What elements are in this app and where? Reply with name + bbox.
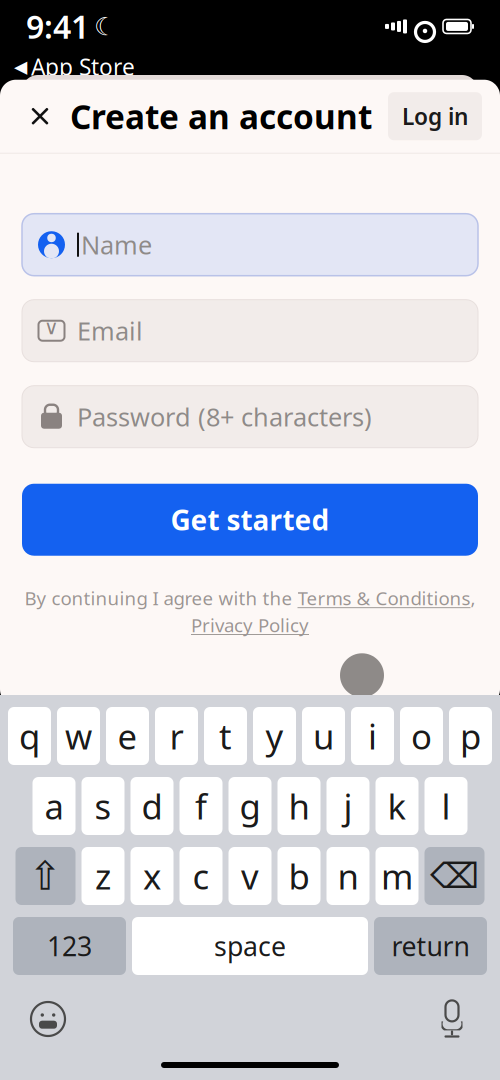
staticText: Get started bbox=[170, 501, 329, 538]
button[interactable]: i bbox=[351, 707, 394, 765]
staticText: space bbox=[214, 928, 286, 964]
button[interactable]: c bbox=[179, 847, 222, 905]
staticText: x bbox=[143, 853, 161, 899]
button[interactable]: a bbox=[32, 777, 75, 835]
button[interactable]: f bbox=[179, 777, 222, 835]
staticText: Terms & Conditions bbox=[297, 586, 470, 610]
button[interactable]: Emoji bbox=[22, 997, 74, 1041]
button[interactable]: return bbox=[374, 917, 487, 975]
staticText: i bbox=[368, 713, 377, 759]
staticText: 123 bbox=[47, 928, 92, 964]
staticText: s bbox=[94, 783, 111, 829]
staticText: ◀ bbox=[14, 57, 27, 77]
staticText: , bbox=[470, 586, 475, 610]
button[interactable]: Log in bbox=[388, 92, 482, 140]
button[interactable]: j bbox=[326, 777, 369, 835]
button[interactable]: t bbox=[204, 707, 247, 765]
staticText: ☾ bbox=[94, 12, 117, 41]
button[interactable]: w bbox=[57, 707, 100, 765]
button[interactable]: p bbox=[449, 707, 492, 765]
button[interactable]: space bbox=[132, 917, 368, 975]
staticText: j bbox=[343, 783, 352, 829]
button[interactable]: v bbox=[228, 847, 271, 905]
button[interactable]: d bbox=[130, 777, 173, 835]
staticText: y bbox=[265, 713, 283, 759]
staticText: Name bbox=[81, 228, 152, 261]
staticText: z bbox=[95, 853, 111, 899]
button[interactable]: Shift bbox=[15, 847, 75, 905]
button[interactable]: Profile bbox=[340, 653, 384, 697]
button[interactable]: 123 bbox=[13, 917, 126, 975]
staticText: f bbox=[195, 783, 207, 829]
staticText: n bbox=[337, 853, 358, 899]
staticText: By continuing I agree with the bbox=[24, 586, 297, 610]
staticText: p bbox=[460, 713, 481, 759]
staticText: h bbox=[288, 783, 309, 829]
button[interactable]: x bbox=[130, 847, 173, 905]
staticText: v bbox=[241, 853, 259, 899]
staticText: k bbox=[387, 783, 406, 829]
button[interactable]: Privacy Policy bbox=[191, 612, 309, 637]
staticText: w bbox=[65, 713, 92, 759]
staticText: r bbox=[169, 713, 183, 759]
staticText: t bbox=[219, 713, 232, 759]
staticText: ⇧ bbox=[28, 853, 62, 899]
button[interactable]: Name bbox=[22, 214, 478, 276]
button[interactable]: Terms & Conditions bbox=[297, 586, 470, 610]
staticText: l bbox=[441, 783, 450, 829]
button[interactable]: Password (8+ characters) bbox=[22, 386, 478, 448]
button[interactable]: g bbox=[228, 777, 271, 835]
staticText: ⌫ bbox=[430, 856, 479, 896]
staticText: c bbox=[192, 853, 209, 899]
staticText: Privacy Policy bbox=[191, 612, 309, 637]
button[interactable]: l bbox=[424, 777, 467, 835]
button[interactable]: r bbox=[155, 707, 198, 765]
staticText: a bbox=[44, 783, 63, 829]
staticText: Log in bbox=[402, 101, 468, 131]
staticText: m bbox=[381, 853, 413, 899]
staticText: return bbox=[391, 928, 469, 964]
staticText: b bbox=[288, 853, 309, 899]
staticText: o bbox=[411, 713, 432, 759]
staticText: Password (8+ characters) bbox=[77, 400, 372, 433]
button[interactable]: ∨ bbox=[22, 300, 478, 362]
staticText: ∨ bbox=[44, 316, 59, 339]
button[interactable]: o bbox=[400, 707, 443, 765]
button[interactable]: u bbox=[302, 707, 345, 765]
staticText: u bbox=[313, 713, 334, 759]
button[interactable]: m bbox=[375, 847, 418, 905]
button[interactable]: Close bbox=[18, 94, 62, 138]
staticText: e bbox=[117, 713, 137, 759]
button[interactable]: e bbox=[106, 707, 149, 765]
button[interactable]: z bbox=[81, 847, 124, 905]
staticText: Create an account bbox=[70, 94, 372, 138]
button[interactable]: n bbox=[326, 847, 369, 905]
button[interactable]: h bbox=[277, 777, 320, 835]
staticText: Email bbox=[77, 314, 143, 347]
staticText: 9:41 bbox=[26, 5, 89, 48]
button[interactable]: Delete bbox=[424, 847, 484, 905]
button[interactable]: y bbox=[253, 707, 296, 765]
button[interactable]: q bbox=[8, 707, 51, 765]
button[interactable]: Get started bbox=[22, 484, 478, 556]
staticText: App Store bbox=[31, 52, 135, 82]
staticText: q bbox=[19, 713, 40, 759]
button[interactable]: k bbox=[375, 777, 418, 835]
button[interactable]: ◀ bbox=[14, 52, 135, 82]
staticText: g bbox=[239, 783, 260, 829]
staticText: d bbox=[141, 783, 162, 829]
button[interactable]: b bbox=[277, 847, 320, 905]
button[interactable]: Dictation bbox=[426, 997, 478, 1041]
button[interactable]: s bbox=[81, 777, 124, 835]
